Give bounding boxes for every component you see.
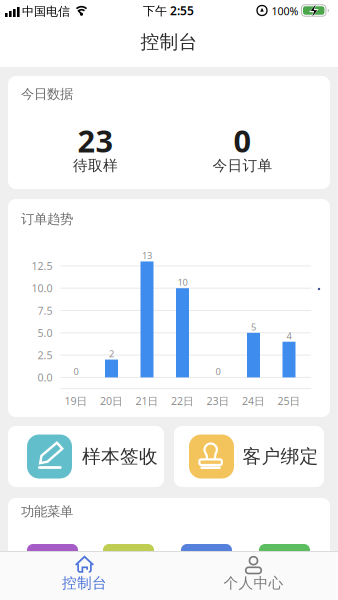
button[interactable]: 菜单四 [259, 544, 310, 574]
staticText: 个人中心 [223, 574, 283, 592]
staticText: 控制台 [62, 574, 107, 592]
button[interactable]: 菜单二 [103, 544, 154, 574]
staticText: 2.5 [37, 348, 52, 362]
staticText: 0 [233, 120, 251, 161]
staticText: 23 [77, 120, 113, 161]
staticText: 20日 [100, 394, 123, 408]
staticText: 功能菜单 [21, 503, 73, 520]
staticText: 7.5 [37, 303, 52, 318]
staticText: 样本签收 [82, 445, 158, 468]
staticText: 5.0 [37, 326, 52, 340]
staticText: 下午 2:55 [143, 2, 194, 18]
staticText: 21日 [135, 394, 158, 408]
button[interactable]: 客户绑定 [174, 426, 324, 487]
staticText: 22日 [171, 394, 194, 408]
staticText: 10 [177, 276, 187, 288]
staticText: 中国电信 [22, 4, 70, 19]
staticText: 23日 [206, 394, 229, 408]
button[interactable]: 菜单一 [27, 544, 78, 574]
staticText: 0 [73, 365, 78, 378]
button[interactable]: 控制台 [0, 551, 169, 600]
staticText: 5 [251, 321, 256, 333]
staticText: 25日 [277, 394, 300, 408]
staticText: 0.0 [37, 370, 52, 384]
staticText: 今日订单 [212, 156, 272, 174]
staticText: 今日数据 [21, 86, 73, 102]
staticText: 0 [215, 365, 220, 378]
staticText: 13 [142, 249, 152, 262]
staticText: 客户绑定 [242, 445, 318, 468]
staticText: 2 [109, 347, 114, 360]
button[interactable]: 样本签收 [8, 426, 164, 487]
staticText: 100% [271, 4, 298, 18]
staticText: 待取样 [73, 156, 118, 174]
staticText: 24日 [242, 394, 265, 408]
staticText: 4 [286, 329, 291, 342]
staticText: 控制台 [140, 30, 197, 53]
staticText: 12.5 [31, 259, 52, 273]
button[interactable]: 个人中心 [169, 551, 338, 600]
staticText: 10.0 [31, 281, 52, 295]
staticText: 19日 [64, 394, 87, 408]
staticText: 订单趋势 [21, 211, 73, 227]
button[interactable]: 菜单三 [181, 544, 232, 574]
